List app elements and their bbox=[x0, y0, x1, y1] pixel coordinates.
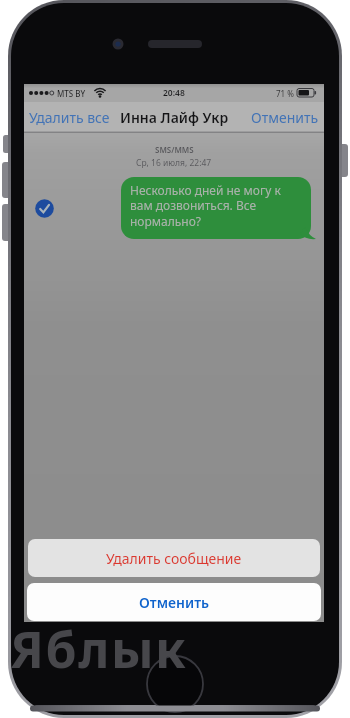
staticText: Несколько дней не могу к вам дозвониться… bbox=[130, 182, 281, 230]
staticText: 71 % bbox=[276, 88, 294, 99]
button[interactable] bbox=[35, 199, 54, 218]
button[interactable]: Отменить bbox=[249, 102, 319, 132]
staticText: 20:48 bbox=[163, 87, 185, 99]
staticText: Яблык bbox=[10, 615, 188, 683]
staticText: Ср, 16 июля, 22:47 bbox=[136, 157, 212, 169]
button[interactable]: Удалить все bbox=[29, 102, 124, 132]
button[interactable]: Отменить bbox=[27, 583, 321, 621]
staticText: MTS BY bbox=[57, 88, 86, 99]
staticText: Отменить bbox=[139, 593, 210, 612]
staticText: SMS/MMS bbox=[155, 144, 194, 155]
staticText: Удалить сообщение bbox=[106, 549, 242, 568]
staticText: Инна Лайф Укр bbox=[120, 108, 229, 127]
button[interactable]: Удалить сообщение bbox=[28, 539, 320, 577]
button[interactable] bbox=[121, 177, 311, 239]
staticText: Удалить все bbox=[29, 108, 110, 127]
staticText: Отменить bbox=[251, 108, 319, 127]
